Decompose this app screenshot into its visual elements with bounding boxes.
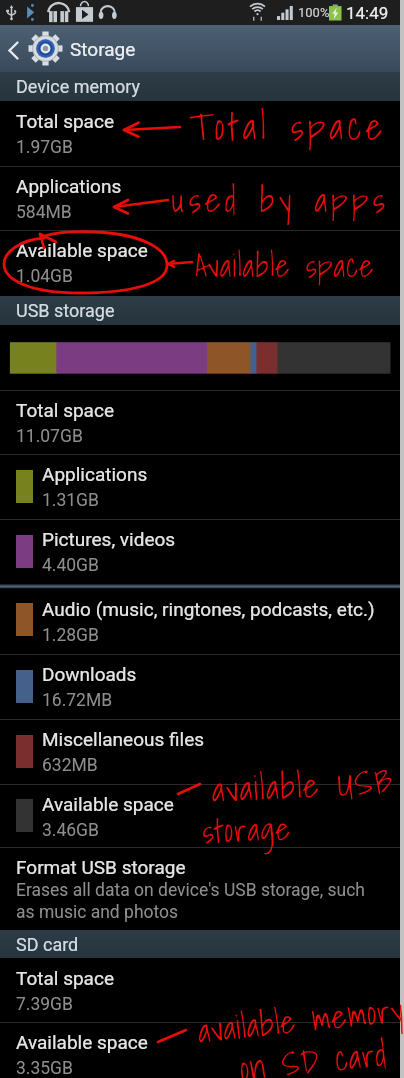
staticText: Erases all data on device's USB storage,… (16, 880, 365, 923)
button[interactable]: Settings (28, 25, 62, 72)
staticText: 3.35GB (16, 1058, 73, 1078)
staticText: 1.97GB (16, 137, 73, 158)
staticText: 3.46GB (42, 820, 99, 841)
staticText: available USB (211, 754, 396, 817)
staticText: used by apps (171, 172, 390, 227)
staticText: Format USB storage (16, 856, 186, 878)
staticText: 4.40GB (42, 555, 99, 576)
button[interactable]: Navigate up (0, 25, 28, 72)
button[interactable]: Miscellaneous files (0, 719, 404, 784)
staticText: Applications (42, 463, 148, 485)
staticText: storage (201, 802, 293, 856)
staticText: Available space (42, 793, 174, 815)
button[interactable]: Available space (0, 230, 404, 296)
button[interactable]: Total space (0, 390, 404, 454)
staticText: available memory (195, 982, 404, 1057)
button[interactable]: Format USB storage (0, 847, 404, 930)
staticText: Available space (195, 241, 375, 291)
staticText: 1.04GB (16, 266, 73, 287)
staticText: Total space (16, 399, 114, 421)
staticText: Downloads (42, 663, 137, 685)
button[interactable]: Total space (0, 958, 404, 1022)
staticText: 584MB (16, 202, 72, 223)
staticText: 11.07GB (16, 426, 83, 447)
staticText: 100% (298, 5, 330, 20)
staticText: 16.72MB (42, 690, 113, 711)
staticText: Pictures, videos (42, 528, 176, 550)
staticText: Miscellaneous files (42, 728, 205, 750)
staticText: Available space (16, 239, 148, 261)
staticText: 1.31GB (42, 490, 99, 511)
staticText: Applications (16, 175, 122, 197)
staticText: Total space (16, 967, 114, 989)
staticText: Total space (16, 110, 114, 132)
staticText: Available space (16, 1031, 148, 1053)
staticText: 1.28GB (42, 625, 99, 646)
staticText: SD card (16, 934, 79, 955)
staticText: Device memory (16, 76, 140, 97)
button[interactable]: Available space (0, 1022, 404, 1078)
staticText: USB storage (16, 300, 115, 321)
staticText: on SD card (237, 1027, 390, 1078)
staticText: Audio (music, ringtones, podcasts, etc.) (42, 598, 375, 620)
button[interactable]: Available space (0, 784, 404, 847)
staticText: 7.39GB (16, 994, 73, 1015)
button[interactable]: Pictures, videos (0, 519, 404, 584)
staticText: 632MB (42, 755, 98, 776)
staticText: 14:49 (346, 3, 389, 23)
button[interactable]: Applications (0, 166, 404, 230)
staticText: Storage (70, 38, 136, 60)
button[interactable]: Total space (0, 101, 404, 166)
button[interactable]: Downloads (0, 654, 404, 719)
staticText: Total space (189, 98, 387, 156)
button[interactable]: Applications (0, 454, 404, 519)
button[interactable]: Audio (music, ringtones, podcasts, etc.) (0, 584, 404, 654)
